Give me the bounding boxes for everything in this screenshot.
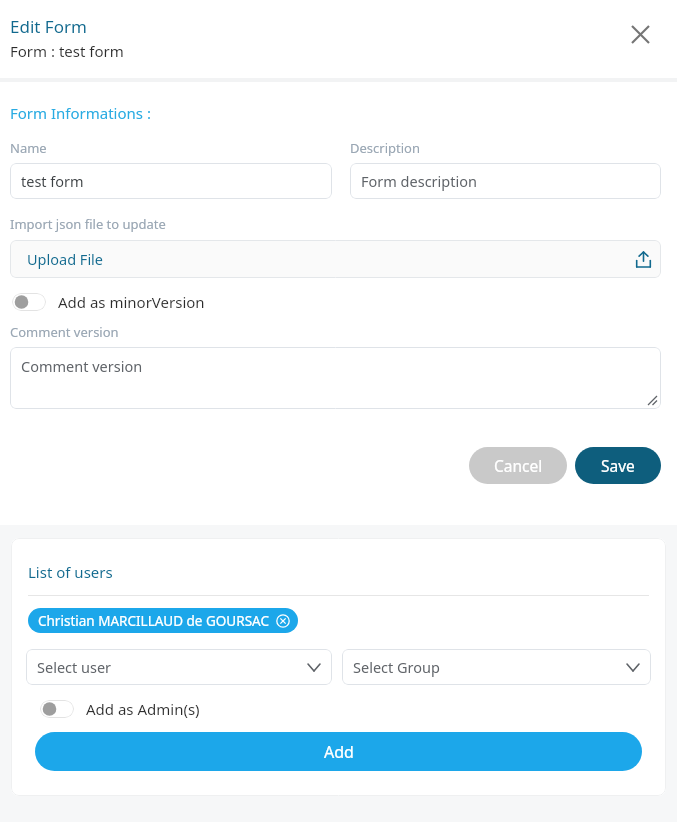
button[interactable]: Comment version: [10, 347, 661, 409]
button[interactable]: Close: [623, 17, 657, 51]
staticText: Cancel: [494, 455, 543, 476]
button[interactable]: test form: [10, 163, 332, 199]
staticText: Select user: [37, 657, 112, 677]
staticText: Add as Admin(s): [86, 699, 200, 719]
button[interactable]: Add: [35, 732, 642, 771]
staticText: Christian MARCILLAUD de GOURSAC: [38, 612, 269, 630]
button[interactable]: Add as minorVersion: [10, 292, 205, 312]
staticText: Select Group: [353, 657, 440, 677]
staticText: Add: [324, 741, 354, 763]
button[interactable]: Form description: [350, 163, 661, 199]
staticText: Name: [10, 139, 47, 157]
staticText: Description: [350, 139, 420, 157]
staticText: Form description: [361, 171, 477, 191]
staticText: Add as minorVersion: [58, 292, 205, 312]
staticText: Import json file to update: [10, 215, 166, 233]
button[interactable]: Cancel: [469, 447, 567, 484]
button[interactable]: Select Group: [342, 649, 651, 685]
button[interactable]: Upload File: [10, 240, 661, 278]
button[interactable]: Save: [575, 447, 661, 484]
button[interactable]: Christian MARCILLAUD de GOURSAC: [28, 608, 298, 633]
staticText: Upload File: [27, 249, 104, 269]
staticText: List of users: [28, 562, 113, 582]
button[interactable]: Add as Admin(s): [40, 699, 200, 719]
staticText: Form Informations :: [10, 103, 151, 123]
staticText: Save: [601, 455, 635, 476]
staticText: Edit Form: [10, 15, 87, 38]
staticText: test form: [21, 171, 84, 191]
staticText: Comment version: [21, 356, 143, 376]
staticText: Form : test form: [10, 41, 124, 61]
button[interactable]: Select user: [26, 649, 332, 685]
staticText: Comment version: [10, 323, 119, 341]
